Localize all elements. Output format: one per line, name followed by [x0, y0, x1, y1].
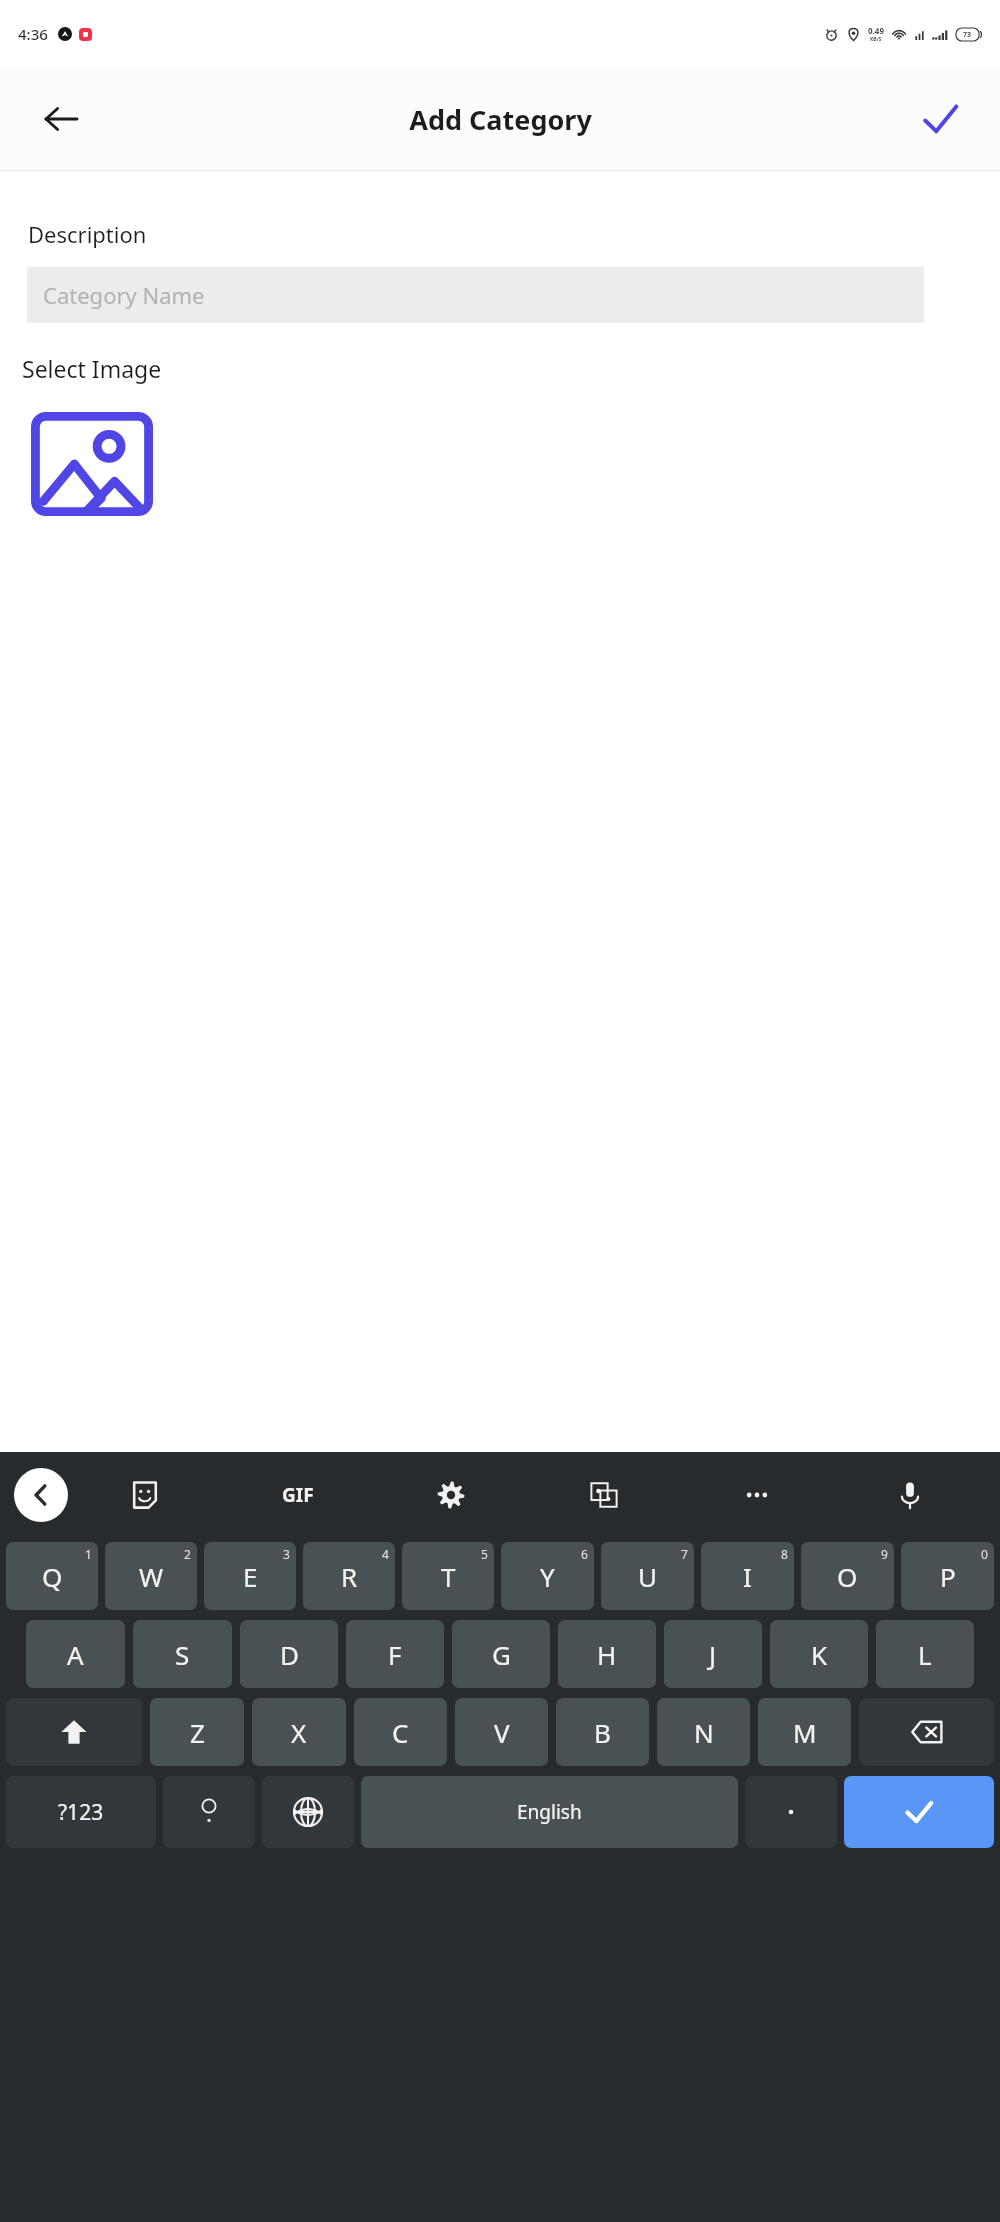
staticText: W: [139, 1559, 164, 1594]
staticText: 8: [781, 1546, 788, 1562]
staticText: 3: [283, 1546, 290, 1562]
staticText: ?123: [58, 1798, 104, 1827]
staticText: 0.49: [868, 25, 884, 36]
button[interactable]: GIF: [221, 1452, 374, 1538]
staticText: Q: [42, 1559, 63, 1594]
button[interactable]: E: [204, 1542, 296, 1610]
staticText: Add Category: [409, 101, 592, 138]
button[interactable]: Stickers: [68, 1452, 221, 1538]
button[interactable]: T: [402, 1542, 494, 1610]
staticText: E: [243, 1559, 258, 1594]
staticText: Description: [28, 219, 147, 249]
button[interactable]: F: [346, 1620, 444, 1688]
button[interactable]: J: [664, 1620, 762, 1688]
button[interactable]: Enter: [844, 1776, 994, 1848]
button[interactable]: ?123: [6, 1776, 156, 1848]
button[interactable]: D: [240, 1620, 338, 1688]
button[interactable]: Y: [501, 1542, 594, 1610]
button[interactable]: Voice input: [833, 1452, 986, 1538]
button[interactable]: Back: [30, 88, 92, 150]
staticText: N: [694, 1715, 714, 1750]
button[interactable]: B: [556, 1698, 649, 1766]
staticText: 6: [581, 1546, 588, 1562]
button[interactable]: U: [601, 1542, 694, 1610]
button[interactable]: Translate: [527, 1452, 680, 1538]
staticText: K: [811, 1637, 828, 1672]
staticText: L: [918, 1637, 932, 1672]
button[interactable]: A: [26, 1620, 125, 1688]
staticText: English: [517, 1799, 582, 1825]
staticText: P: [940, 1559, 956, 1594]
button[interactable]: V: [455, 1698, 548, 1766]
staticText: A: [67, 1637, 84, 1672]
button[interactable]: English: [361, 1776, 738, 1848]
button[interactable]: M: [758, 1698, 851, 1766]
button[interactable]: R: [303, 1542, 395, 1610]
button[interactable]: W: [105, 1542, 197, 1610]
staticText: 0: [981, 1546, 988, 1562]
staticText: 73: [963, 30, 972, 40]
staticText: Category Name: [43, 280, 205, 310]
button[interactable]: Category Name: [27, 267, 924, 323]
button[interactable]: Shift: [6, 1698, 142, 1766]
staticText: Z: [190, 1715, 205, 1750]
staticText: KB/S: [870, 36, 882, 43]
staticText: T: [441, 1559, 456, 1594]
button[interactable]: S: [133, 1620, 232, 1688]
button[interactable]: Q: [6, 1542, 98, 1610]
button[interactable]: Backspace: [859, 1698, 994, 1766]
staticText: 5: [481, 1546, 488, 1562]
button[interactable]: Period: [745, 1776, 837, 1848]
button[interactable]: Change language: [262, 1776, 354, 1848]
button[interactable]: L: [876, 1620, 974, 1688]
staticText: 9: [881, 1546, 888, 1562]
staticText: X: [291, 1715, 307, 1750]
button[interactable]: Z: [150, 1698, 244, 1766]
staticText: U: [638, 1559, 658, 1594]
staticText: 7: [681, 1546, 688, 1562]
button[interactable]: P: [901, 1542, 994, 1610]
button[interactable]: Emoji and comma: [163, 1776, 255, 1848]
button[interactable]: N: [657, 1698, 750, 1766]
button[interactable]: Save: [908, 87, 972, 151]
button[interactable]: O: [801, 1542, 894, 1610]
staticText: G: [492, 1637, 511, 1672]
staticText: D: [280, 1637, 299, 1672]
button[interactable]: More options: [680, 1452, 833, 1538]
staticText: C: [392, 1715, 409, 1750]
staticText: B: [594, 1715, 611, 1750]
staticText: O: [837, 1559, 858, 1594]
staticText: R: [341, 1559, 358, 1594]
button[interactable]: Collapse toolbar: [14, 1468, 68, 1522]
button[interactable]: K: [770, 1620, 868, 1688]
staticText: Select Image: [22, 353, 162, 384]
button[interactable]: H: [558, 1620, 656, 1688]
staticText: 2: [184, 1546, 191, 1562]
button[interactable]: Settings: [374, 1452, 527, 1538]
button[interactable]: I: [701, 1542, 794, 1610]
staticText: F: [388, 1637, 402, 1672]
button[interactable]: C: [354, 1698, 447, 1766]
staticText: 4: [382, 1546, 389, 1562]
staticText: M: [793, 1715, 817, 1750]
staticText: 4:36: [18, 24, 48, 44]
staticText: V: [494, 1715, 510, 1750]
staticText: 1: [85, 1546, 92, 1562]
button[interactable]: X: [252, 1698, 346, 1766]
staticText: I: [743, 1559, 752, 1594]
staticText: GIF: [282, 1482, 314, 1508]
staticText: J: [709, 1637, 717, 1672]
button[interactable]: Select Image: [31, 412, 153, 516]
button[interactable]: G: [452, 1620, 550, 1688]
staticText: Y: [540, 1559, 555, 1594]
staticText: S: [175, 1637, 190, 1672]
staticText: H: [597, 1637, 617, 1672]
